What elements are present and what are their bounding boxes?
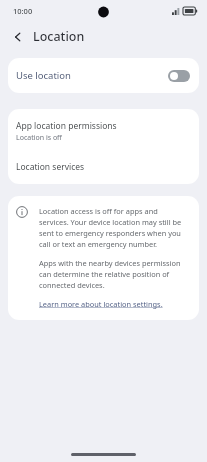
button[interactable]: Learn more about location settings. bbox=[39, 299, 163, 309]
button[interactable]: Use location bbox=[8, 58, 199, 93]
button[interactable]: Location services bbox=[8, 152, 199, 184]
staticText: Location is off bbox=[16, 133, 62, 143]
staticText: Location bbox=[33, 28, 85, 45]
staticText: Use location bbox=[16, 69, 168, 82]
staticText: Apps with the nearby devices permission … bbox=[39, 258, 189, 290]
staticText: Location access is off for apps and serv… bbox=[39, 206, 189, 249]
button[interactable]: App location permissions bbox=[8, 109, 199, 152]
button[interactable]: Back bbox=[8, 27, 28, 47]
staticText: 10:00 bbox=[13, 6, 33, 16]
button[interactable]: Use location toggle bbox=[168, 70, 190, 82]
staticText: App location permissions bbox=[16, 120, 117, 132]
staticText: Learn more about location settings. bbox=[39, 299, 163, 309]
staticText: Location services bbox=[16, 161, 85, 173]
